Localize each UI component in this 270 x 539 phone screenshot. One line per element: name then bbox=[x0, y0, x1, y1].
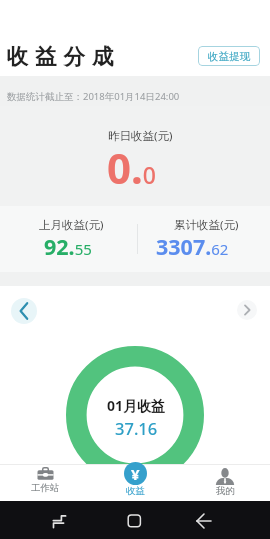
button[interactable] bbox=[180, 501, 270, 539]
staticText: ¥ bbox=[131, 464, 140, 484]
staticText: 92.55 bbox=[44, 232, 92, 261]
button[interactable]: 累计收益(元) bbox=[135, 206, 270, 272]
button[interactable] bbox=[0, 501, 90, 539]
button[interactable] bbox=[90, 501, 180, 539]
staticText: 37.16 bbox=[115, 417, 158, 439]
staticText: 收益 bbox=[126, 485, 145, 497]
staticText: 昨日收益(元) bbox=[108, 128, 173, 144]
staticText: 数据统计截止至：2018年01月14日24:00 bbox=[7, 90, 180, 103]
staticText: 0.0 bbox=[107, 139, 156, 196]
button[interactable]: ¥ bbox=[90, 464, 180, 501]
button[interactable]: 我的 bbox=[180, 464, 270, 501]
button[interactable] bbox=[11, 298, 37, 324]
staticText: 收益分成 bbox=[3, 43, 117, 70]
button[interactable]: 上月收益(元) bbox=[0, 206, 135, 272]
staticText: 累计收益(元) bbox=[174, 217, 239, 233]
staticText: 收益提现 bbox=[208, 50, 250, 63]
staticText: 3307.62 bbox=[156, 232, 229, 261]
staticText: 上月收益(元) bbox=[39, 217, 104, 233]
staticText: 01月收益 bbox=[107, 396, 166, 415]
staticText: 工作站 bbox=[31, 482, 60, 494]
staticText: 我的 bbox=[216, 485, 235, 497]
button[interactable]: 收益提现 bbox=[198, 46, 260, 66]
button[interactable]: 工作站 bbox=[0, 464, 90, 501]
button[interactable] bbox=[237, 300, 257, 320]
